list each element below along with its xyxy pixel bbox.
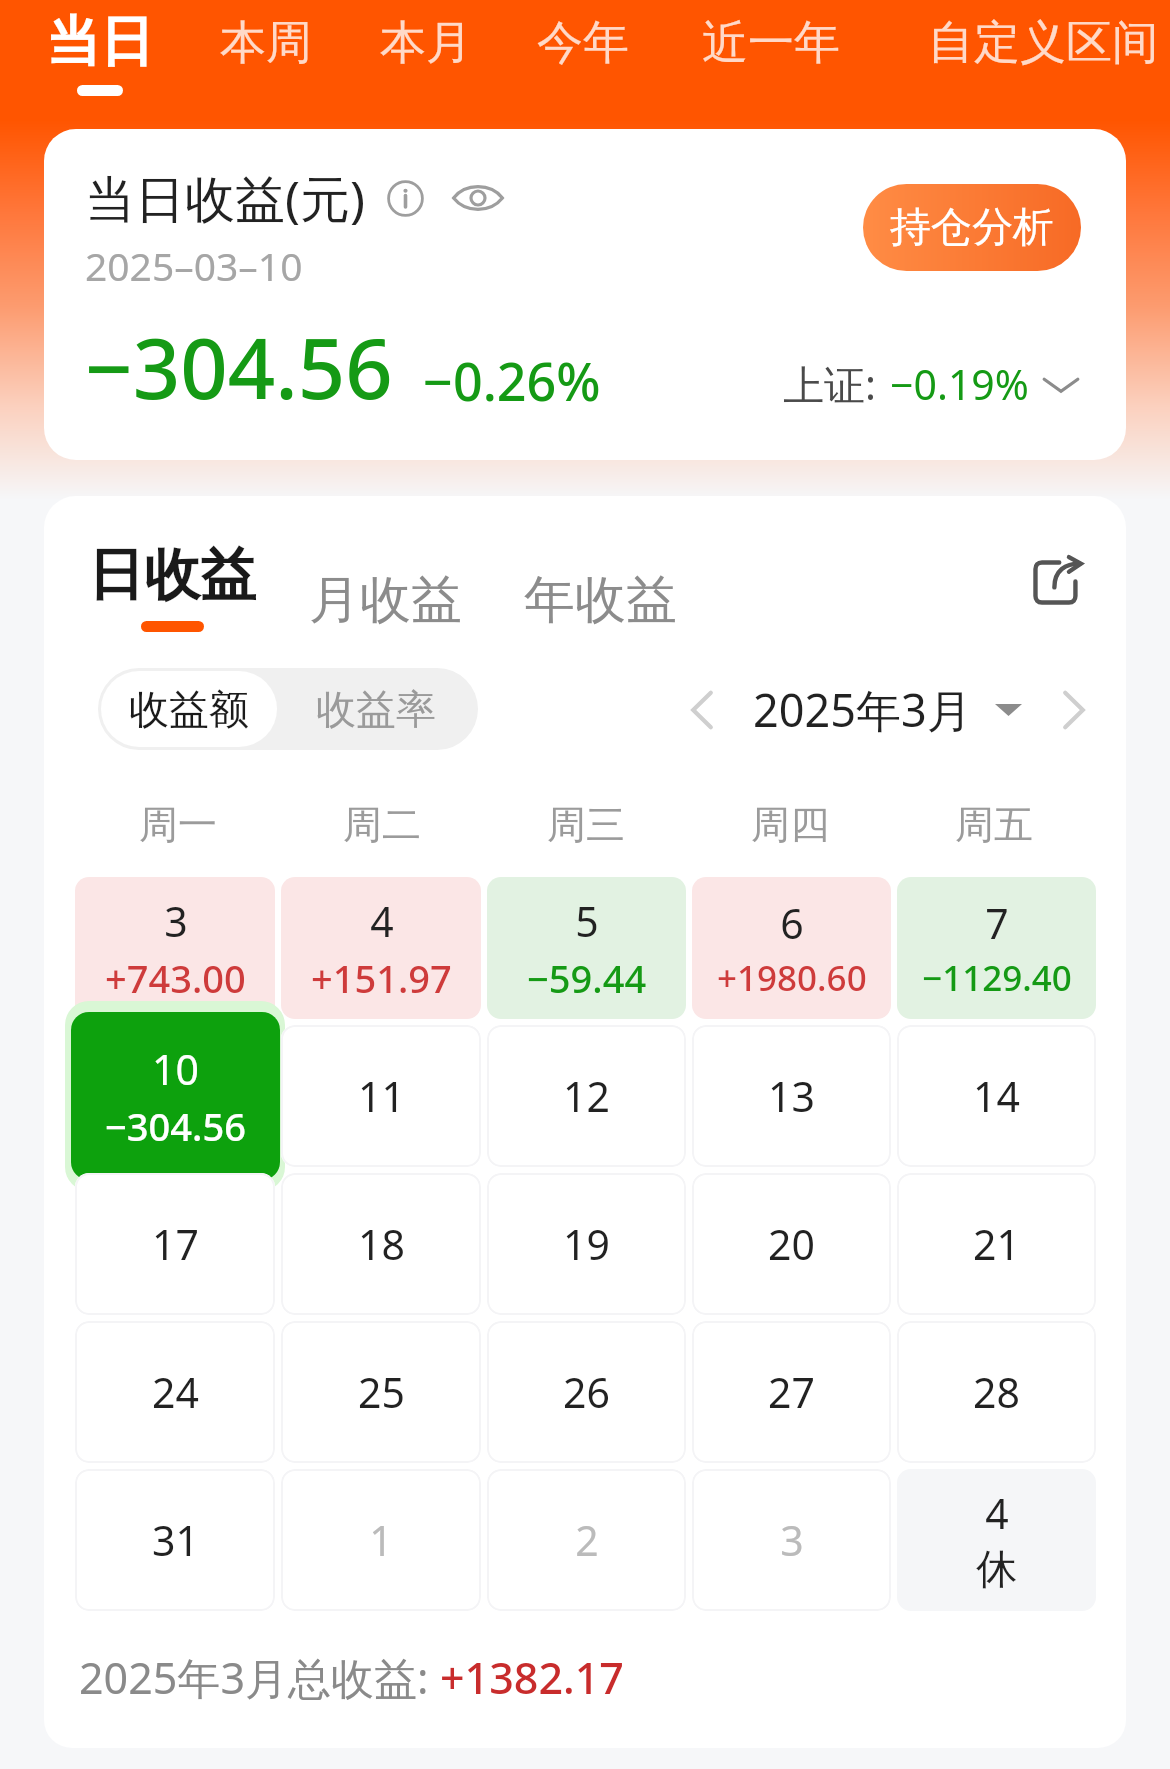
button[interactable]: [692, 877, 891, 1019]
button[interactable]: 持仓分析: [863, 184, 1081, 271]
button[interactable]: [281, 1173, 481, 1315]
staticText: 2025年3月: [753, 679, 972, 740]
button[interactable]: [487, 1173, 686, 1315]
button[interactable]: [75, 877, 275, 1019]
button[interactable]: [75, 1469, 275, 1611]
button[interactable]: [692, 1469, 891, 1611]
button[interactable]: [897, 877, 1096, 1019]
button[interactable]: [281, 877, 481, 1019]
staticText: −59.44: [527, 952, 647, 1004]
staticText: 近一年: [702, 14, 840, 72]
button[interactable]: [281, 1321, 481, 1463]
staticText: 4: [370, 893, 394, 949]
button[interactable]: [75, 1321, 275, 1463]
button[interactable]: 当日: [46, 0, 154, 96]
staticText: 休: [976, 1544, 1017, 1596]
staticText: 12: [563, 1068, 610, 1124]
staticText: 本周: [220, 14, 312, 72]
staticText: 14: [973, 1068, 1020, 1124]
staticText: 持仓分析: [890, 202, 1054, 254]
staticText: 28: [973, 1364, 1020, 1420]
staticText: 1: [369, 1512, 393, 1568]
staticText: 3: [780, 1512, 804, 1568]
button[interactable]: [897, 1321, 1096, 1463]
staticText: 21: [973, 1216, 1020, 1272]
button[interactable]: [487, 877, 686, 1019]
button[interactable]: [897, 1469, 1096, 1611]
staticText: 5: [575, 893, 599, 949]
button[interactable]: 自定义区间: [928, 0, 1158, 72]
staticText: 6: [780, 895, 804, 951]
staticText: 31: [152, 1512, 199, 1568]
button[interactable]: [487, 1025, 686, 1167]
staticText: −304.56: [105, 1100, 246, 1152]
button[interactable]: [487, 1469, 686, 1611]
button[interactable]: [692, 1321, 891, 1463]
staticText: 当日: [46, 8, 154, 76]
staticText: 24: [152, 1364, 199, 1420]
staticText: +151.97: [311, 952, 452, 1004]
staticText: +1382.17: [440, 1648, 624, 1707]
staticText: 26: [563, 1364, 610, 1420]
button[interactable]: [75, 1173, 275, 1315]
staticText: 2025–03–10: [85, 239, 303, 292]
button[interactable]: 收益率: [277, 671, 475, 747]
staticText: 收益额: [129, 684, 249, 734]
button[interactable]: [71, 1012, 280, 1180]
button[interactable]: 日收益: [88, 540, 309, 632]
staticText: 7: [985, 895, 1009, 951]
button[interactable]: [281, 1469, 481, 1611]
button[interactable]: Information: [387, 180, 424, 217]
staticText: 10: [152, 1041, 199, 1097]
staticText: +1980.60: [717, 954, 867, 1002]
staticText: 日收益: [88, 540, 256, 611]
button[interactable]: 本月: [380, 0, 472, 72]
button[interactable]: Share: [1029, 555, 1083, 609]
staticText: 今年: [537, 14, 629, 72]
button[interactable]: [692, 1025, 891, 1167]
staticText: 11: [358, 1068, 405, 1124]
staticText: 年收益: [524, 568, 677, 632]
staticText: 19: [563, 1216, 610, 1272]
button[interactable]: 月收益: [309, 568, 524, 632]
staticText: 17: [152, 1216, 199, 1272]
staticText: −304.56: [85, 310, 393, 423]
button[interactable]: [897, 1025, 1096, 1167]
staticText: 自定义区间: [928, 14, 1158, 72]
staticText: 20: [768, 1216, 815, 1272]
button[interactable]: Previous month: [680, 688, 724, 732]
staticText: 13: [768, 1068, 815, 1124]
staticText: 上证:: [783, 356, 876, 412]
staticText: 当日收益(元): [85, 164, 365, 232]
button[interactable]: Next month: [1052, 688, 1096, 732]
staticText: −1129.40: [922, 954, 1072, 1002]
staticText: −0.26%: [423, 345, 601, 416]
button[interactable]: 近一年: [702, 0, 840, 72]
button[interactable]: 年收益: [524, 568, 677, 632]
staticText: 18: [358, 1216, 405, 1272]
button[interactable]: [692, 1173, 891, 1315]
staticText: +743.00: [105, 952, 246, 1004]
staticText: 2025年3月总收益:: [79, 1648, 440, 1707]
button[interactable]: 本周: [220, 0, 312, 72]
button[interactable]: 上证:: [783, 356, 1081, 412]
staticText: 本月: [380, 14, 472, 72]
button[interactable]: Hide amount: [452, 172, 504, 224]
button[interactable]: 今年: [537, 0, 629, 72]
staticText: 4: [985, 1485, 1009, 1541]
staticText: 3: [164, 893, 188, 949]
staticText: 周二: [343, 800, 421, 849]
staticText: 2: [575, 1512, 599, 1568]
staticText: 月收益: [309, 568, 462, 632]
staticText: 收益率: [316, 684, 436, 734]
button[interactable]: [281, 1025, 481, 1167]
staticText: 周四: [751, 800, 829, 849]
staticText: 周五: [955, 800, 1033, 849]
button[interactable]: [487, 1321, 686, 1463]
staticText: 周一: [139, 800, 217, 849]
staticText: 27: [768, 1364, 815, 1420]
button[interactable]: [897, 1173, 1096, 1315]
button[interactable]: 收益额: [101, 671, 277, 747]
staticText: 周三: [547, 800, 625, 849]
staticText: −0.19%: [890, 356, 1029, 412]
